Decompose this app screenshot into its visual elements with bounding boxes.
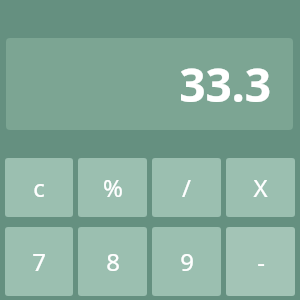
staticText: % — [103, 171, 123, 204]
staticText: 33.3 — [179, 53, 271, 116]
staticText: 7 — [32, 245, 46, 278]
staticText: c — [33, 171, 45, 204]
button[interactable]: X — [226, 158, 295, 217]
button[interactable]: % — [78, 158, 147, 217]
button[interactable]: 8 — [78, 227, 147, 296]
staticText: - — [257, 245, 265, 278]
button[interactable]: - — [226, 227, 295, 296]
button[interactable]: c — [5, 158, 73, 217]
button[interactable]: 33.3 — [6, 38, 293, 130]
staticText: / — [182, 171, 191, 204]
button[interactable]: 9 — [152, 227, 221, 296]
staticText: 8 — [106, 245, 120, 278]
staticText: 9 — [180, 245, 194, 278]
staticText: X — [253, 171, 268, 204]
button[interactable]: / — [152, 158, 221, 217]
button[interactable]: 7 — [5, 227, 73, 296]
